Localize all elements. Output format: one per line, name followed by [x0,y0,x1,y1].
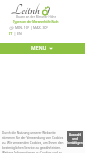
staticText: Typen an der Meranerhöfe Ruch [13,20,59,24]
staticText: MIN. 10° | MAX. 30° [15,25,48,30]
staticText: Leitnh [11,3,40,15]
staticText: Durch die Nutzung unserer Webseite stimm… [2,131,65,153]
button[interactable]: IT [9,31,13,36]
staticText: MENU [31,45,47,52]
staticText: | [13,31,17,36]
staticText: Bauen an der Meraner Höhe [16,15,57,19]
button[interactable]: Auswahl und bestätigen [67,131,83,147]
staticText: f [47,3,50,15]
button[interactable]: MENU [0,43,85,54]
button[interactable]: EN [17,31,22,36]
staticText: Auswahl und bestätigen [67,133,83,145]
